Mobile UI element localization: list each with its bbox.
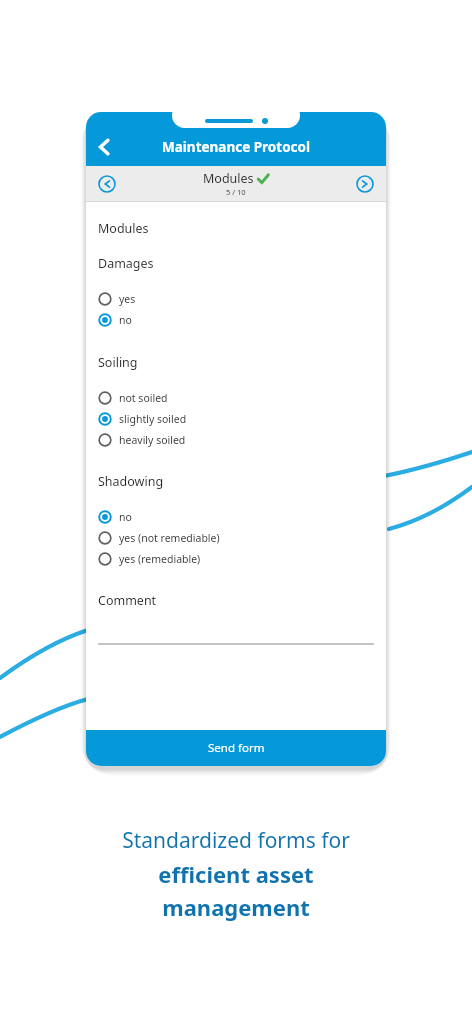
button[interactable]: yes bbox=[98, 288, 374, 309]
staticText: heavily soiled bbox=[119, 433, 186, 447]
staticText: Send form bbox=[208, 740, 265, 756]
staticText: Comment bbox=[98, 592, 157, 609]
button[interactable]: yes (not remediable) bbox=[98, 527, 374, 548]
staticText: efficient asset bbox=[158, 859, 314, 889]
staticText: management bbox=[162, 892, 310, 922]
button[interactable]: yes (remediable) bbox=[98, 548, 374, 569]
staticText: no bbox=[119, 313, 132, 327]
button[interactable]: not soiled bbox=[98, 387, 374, 408]
staticText: yes (not remediable) bbox=[119, 531, 220, 545]
button[interactable]: Send form bbox=[86, 730, 386, 766]
staticText: yes (remediable) bbox=[119, 552, 201, 566]
staticText: 5 / 10 bbox=[226, 187, 246, 197]
staticText: not soiled bbox=[119, 391, 168, 405]
button[interactable]: slightly soiled bbox=[98, 408, 374, 429]
staticText: yes bbox=[119, 292, 136, 306]
button[interactable]: Next bbox=[352, 171, 378, 197]
staticText: no bbox=[119, 510, 132, 524]
staticText: slightly soiled bbox=[119, 412, 187, 426]
staticText: Maintenance Protocol bbox=[162, 138, 311, 156]
button[interactable]: Back bbox=[86, 128, 124, 166]
staticText: Modules bbox=[98, 220, 149, 237]
staticText: Shadowing bbox=[98, 473, 164, 490]
staticText: Standardized forms for bbox=[122, 826, 350, 855]
button[interactable]: no bbox=[98, 506, 374, 527]
button[interactable]: Previous bbox=[94, 171, 120, 197]
button[interactable]: heavily soiled bbox=[98, 429, 374, 450]
staticText: Damages bbox=[98, 255, 154, 272]
button[interactable]: no bbox=[98, 309, 374, 330]
staticText: Soiling bbox=[98, 354, 138, 371]
staticText: Modules bbox=[203, 170, 254, 187]
